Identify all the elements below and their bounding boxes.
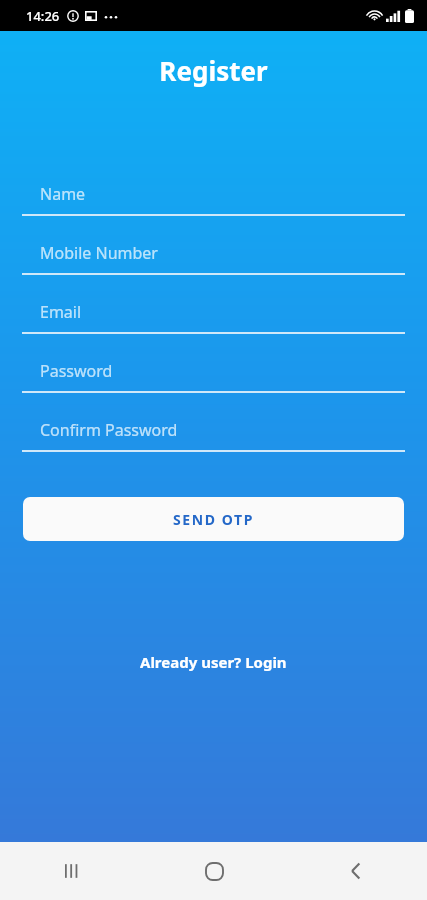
staticText: Confirm Password	[40, 419, 178, 441]
staticText: Already user? Login	[140, 652, 287, 672]
staticText: Name	[40, 183, 86, 205]
staticText: Mobile Number	[40, 242, 158, 264]
button[interactable]: Back	[285, 842, 427, 900]
button[interactable]: Password	[22, 351, 405, 410]
button[interactable]: Home	[143, 842, 285, 900]
staticText: Email	[40, 301, 82, 323]
staticText: Register	[0, 53, 427, 88]
button[interactable]: Confirm Password	[22, 410, 405, 469]
button[interactable]: Already user? Login	[0, 652, 427, 672]
button[interactable]: SEND OTP	[23, 497, 404, 541]
button[interactable]: Mobile Number	[22, 233, 405, 292]
staticText: SEND OTP	[173, 510, 255, 529]
button[interactable]: Email	[22, 292, 405, 351]
button[interactable]: Name	[22, 174, 405, 233]
staticText: Password	[40, 360, 113, 382]
button[interactable]: Recent apps	[0, 842, 143, 900]
staticText: 14:26	[26, 7, 60, 25]
